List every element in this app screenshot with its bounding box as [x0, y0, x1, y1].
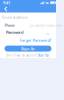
- staticText: Password: [6, 30, 24, 35]
- button[interactable]: Show password: [45, 31, 51, 37]
- button[interactable]: Don't have an account?: [6, 54, 49, 57]
- staticText: Don't have an account?: [6, 54, 37, 57]
- staticText: Forgot Password?: [19, 37, 51, 43]
- staticText: Sign In: [21, 46, 35, 51]
- staticText: jordan@mail.com: [30, 22, 62, 28]
- staticText: Phone: [5, 22, 15, 28]
- button[interactable]: Sign In: [4, 46, 51, 52]
- button[interactable]: Forgot Password?: [19, 37, 51, 43]
- staticText: 9:41: [3, 0, 10, 5]
- button[interactable]: Back: [2, 5, 10, 13]
- staticText: Email Address: [2, 14, 28, 20]
- staticText: Sign Up: [38, 54, 49, 57]
